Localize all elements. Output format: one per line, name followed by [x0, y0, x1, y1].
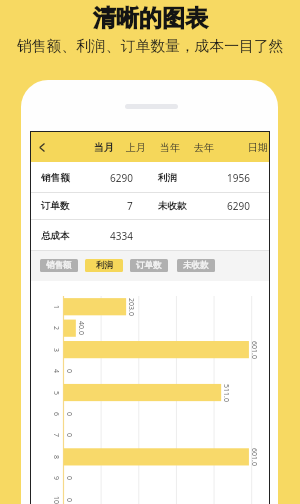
button[interactable]: 返回 — [31, 132, 53, 162]
staticText: 7 — [51, 433, 61, 438]
staticText: 利润 — [158, 172, 177, 184]
staticText: 601.0 — [249, 448, 259, 466]
staticText: 0 — [64, 412, 74, 417]
staticText: 未收款 — [158, 200, 187, 212]
button[interactable]: 上月 — [121, 132, 151, 162]
staticText: 6290 — [110, 171, 133, 185]
staticText: 订单数 — [41, 200, 70, 212]
button[interactable]: 当年 — [155, 132, 185, 162]
staticText: 销售额、利润、订单数量，成本一目了然 — [17, 37, 284, 56]
button[interactable]: 利润 — [85, 259, 123, 272]
staticText: 6290 — [227, 199, 250, 213]
staticText: 订单数 — [136, 260, 162, 271]
staticText: 3 — [51, 348, 61, 353]
staticText: 601.0 — [249, 341, 259, 359]
staticText: 总成本 — [41, 230, 70, 242]
staticText: 0 — [64, 476, 74, 481]
staticText: 5 — [51, 391, 61, 396]
staticText: 销售额 — [46, 260, 72, 271]
staticText: 6 — [51, 412, 61, 417]
staticText: 203.0 — [126, 298, 136, 316]
staticText: 511.0 — [221, 384, 231, 402]
button[interactable]: 去年 — [189, 132, 219, 162]
staticText: 40.0 — [76, 321, 86, 335]
staticText: 当月 — [94, 141, 114, 154]
button[interactable]: 订单数 — [130, 259, 168, 272]
button[interactable]: 销售额 — [40, 259, 78, 272]
staticText: 未收款 — [183, 260, 209, 271]
staticText: 利润 — [96, 260, 113, 271]
staticText: 销售额 — [41, 172, 70, 184]
button[interactable]: 未收款 — [177, 259, 215, 272]
staticText: 日期 — [248, 141, 268, 154]
button[interactable]: 当月 — [89, 132, 119, 162]
staticText: 去年 — [194, 141, 214, 154]
staticText: 上月 — [126, 141, 146, 154]
staticText: 清晰的图表 — [93, 4, 208, 33]
staticText: 0 — [64, 433, 74, 438]
staticText: 9 — [51, 476, 61, 481]
staticText: 7 — [127, 199, 133, 213]
staticText: 当年 — [160, 141, 180, 154]
staticText: 1 — [51, 305, 61, 310]
staticText: 1956 — [227, 171, 250, 185]
staticText: 2 — [51, 326, 61, 331]
staticText: 10 — [51, 496, 61, 504]
staticText: 4 — [51, 369, 61, 374]
staticText: 8 — [51, 455, 61, 460]
staticText: 0 — [64, 498, 74, 503]
staticText: 4334 — [110, 229, 133, 243]
button[interactable]: 日期 — [243, 132, 273, 162]
staticText: 0 — [64, 369, 74, 374]
